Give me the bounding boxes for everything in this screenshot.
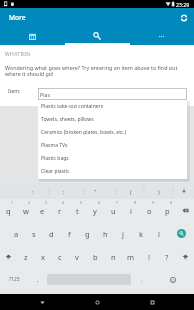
button[interactable]: s	[25, 222, 42, 245]
staticText: b	[93, 252, 98, 262]
staticText: s	[32, 229, 36, 239]
staticText: ;	[63, 188, 65, 195]
button[interactable]: Backspace	[176, 199, 194, 222]
staticText: c	[58, 252, 62, 262]
button[interactable]: "	[87, 183, 103, 199]
staticText: o	[147, 206, 152, 216]
button[interactable]: !	[140, 245, 158, 268]
button[interactable]: f	[60, 222, 78, 245]
button[interactable]: Home	[84, 294, 110, 310]
staticText: Wondering what goes where? Try entering …	[5, 64, 178, 78]
button[interactable]: )	[151, 183, 167, 199]
staticText: r	[58, 206, 62, 216]
button[interactable]: Back	[29, 294, 55, 310]
button[interactable]: k	[132, 222, 150, 245]
staticText: Plasma TVs	[41, 142, 68, 149]
staticText: d	[49, 229, 54, 239]
button[interactable]: Plastic bags	[38, 152, 190, 165]
staticText: v	[75, 252, 79, 262]
staticText: t	[76, 206, 79, 216]
button[interactable]: t	[68, 199, 86, 222]
staticText: Item:	[8, 88, 21, 95]
staticText: Plastic take-out containers	[41, 103, 104, 110]
button[interactable]: p	[158, 199, 176, 222]
button[interactable]: o	[140, 199, 158, 222]
button[interactable]: u	[104, 199, 122, 222]
button[interactable]: n	[104, 245, 122, 268]
staticText: y	[93, 206, 97, 216]
staticText: h	[103, 229, 108, 239]
button[interactable]: c	[51, 245, 68, 268]
button[interactable]: Shift	[176, 245, 194, 268]
button[interactable]: ,	[28, 268, 47, 291]
staticText: 8	[134, 200, 137, 205]
staticText: Clear plastic	[41, 168, 70, 175]
staticText: 1	[11, 200, 14, 205]
staticText: 7	[116, 200, 119, 205]
button[interactable]: Ceramics (broken plates, bowls, etc.)	[38, 126, 190, 139]
button[interactable]: Plastic take-out containers	[38, 100, 190, 113]
button[interactable]: w	[17, 199, 34, 222]
button[interactable]: r	[51, 199, 68, 222]
button[interactable]: Towels, sheets, pillows	[38, 113, 190, 126]
button[interactable]: Download	[176, 183, 192, 199]
button[interactable]: ;	[56, 183, 72, 199]
staticText: Ceramics (broken plates, bowls, etc.)	[41, 129, 127, 136]
button[interactable]: h	[96, 222, 114, 245]
button[interactable]: j	[114, 222, 132, 245]
staticText: 6	[98, 200, 101, 205]
staticText: Plastic bags	[41, 155, 69, 162]
button[interactable]: ?123	[0, 268, 28, 291]
button[interactable]: x	[34, 245, 51, 268]
staticText: 9	[152, 200, 155, 205]
staticText: More	[9, 13, 26, 22]
button[interactable]: Plas	[38, 88, 187, 100]
button[interactable]: l	[150, 222, 168, 245]
staticText: WHATBIN	[5, 51, 31, 58]
button[interactable]: i	[122, 199, 140, 222]
staticText: l	[158, 229, 160, 239]
button[interactable]: Plasma TVs	[38, 139, 190, 152]
staticText: 5	[80, 200, 83, 205]
button[interactable]: z	[17, 245, 34, 268]
staticText: x	[41, 252, 45, 262]
button[interactable]: Search	[64, 27, 129, 45]
button[interactable]: y	[86, 199, 104, 222]
button[interactable]: m	[122, 245, 140, 268]
button[interactable]: b	[86, 245, 104, 268]
button[interactable]: Shift	[0, 245, 17, 268]
button[interactable]: (	[123, 183, 139, 199]
button[interactable]: a	[8, 222, 25, 245]
button[interactable]: d	[42, 222, 60, 245]
button[interactable]: v	[68, 245, 86, 268]
button[interactable]: Schedule	[0, 27, 64, 45]
staticText: .	[141, 276, 143, 284]
staticText: k	[139, 229, 144, 239]
staticText: j	[122, 229, 124, 239]
staticText: ?123	[9, 276, 20, 283]
staticText: Plas	[40, 91, 50, 98]
button[interactable]: e	[34, 199, 51, 222]
staticText: 23:29	[176, 1, 190, 8]
button[interactable]: Emoji	[152, 268, 194, 291]
button[interactable]: g	[78, 222, 96, 245]
button[interactable]: q	[0, 199, 17, 222]
button[interactable]: Sync	[174, 8, 194, 27]
button[interactable]: :	[25, 183, 41, 199]
button[interactable]: ?	[158, 245, 176, 268]
staticText: w	[23, 206, 29, 216]
staticText: (	[130, 188, 132, 195]
staticText: g	[85, 229, 90, 239]
button[interactable]: Clear plastic	[38, 165, 190, 178]
staticText: ,	[37, 276, 39, 284]
staticText: u	[111, 206, 116, 216]
staticText: 4	[62, 200, 65, 205]
staticText: 0	[170, 200, 173, 205]
staticText: z	[24, 252, 28, 262]
button[interactable]: More	[129, 27, 194, 45]
staticText: f	[68, 229, 71, 239]
button[interactable]: Search	[177, 229, 186, 238]
button[interactable]: Recent apps	[139, 294, 165, 310]
